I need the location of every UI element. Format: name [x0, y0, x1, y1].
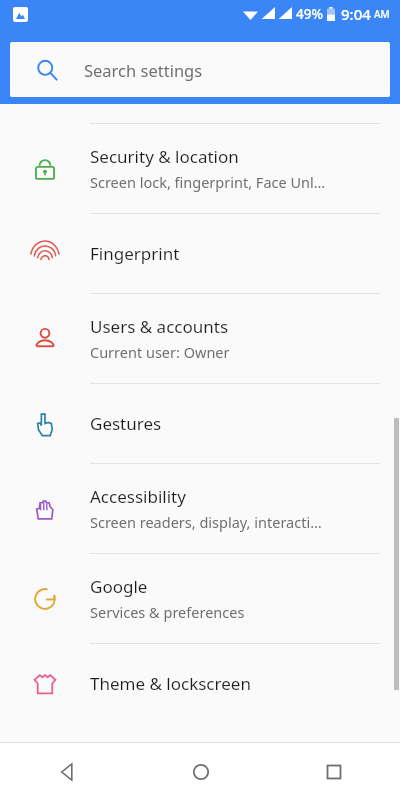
- staticText: 9:04: [341, 4, 371, 24]
- staticText: Screen lock, fingerprint, Face Unl…: [90, 172, 326, 192]
- button[interactable]: Security & location: [0, 124, 400, 213]
- button[interactable]: Back: [0, 743, 134, 800]
- staticText: 49%: [296, 5, 323, 23]
- button[interactable]: Search settings: [10, 42, 390, 97]
- staticText: Services & preferences: [90, 602, 245, 622]
- button[interactable]: Fingerprint: [0, 214, 400, 293]
- staticText: Security & location: [90, 145, 239, 168]
- button[interactable]: Users & accounts: [0, 294, 400, 383]
- button[interactable]: Recents: [267, 743, 400, 800]
- button[interactable]: Google: [0, 554, 400, 643]
- staticText: Search settings: [84, 59, 203, 81]
- staticText: Theme & lockscreen: [90, 672, 251, 695]
- button[interactable]: Home: [134, 743, 267, 800]
- staticText: Gestures: [90, 412, 162, 435]
- staticText: AM: [374, 7, 390, 21]
- staticText: Screen readers, display, interacti…: [90, 512, 322, 532]
- button[interactable]: Theme & lockscreen: [0, 644, 400, 723]
- staticText: Accessibility: [90, 485, 186, 508]
- staticText: Fingerprint: [90, 242, 180, 265]
- button[interactable]: Accessibility: [0, 464, 400, 553]
- staticText: Google: [90, 575, 148, 598]
- button[interactable]: Gestures: [0, 384, 400, 463]
- staticText: Current user: Owner: [90, 342, 230, 362]
- staticText: Users & accounts: [90, 315, 229, 338]
